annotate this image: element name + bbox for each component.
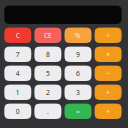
staticText: + (106, 88, 110, 97)
button[interactable]: Decimal point (34, 104, 61, 119)
button[interactable]: 0 (4, 104, 31, 119)
button[interactable]: Subtract (95, 66, 122, 81)
staticText: 1 (16, 88, 20, 97)
button[interactable]: 2 (34, 85, 61, 100)
staticText: 7 (16, 50, 20, 59)
button[interactable]: 8 (34, 47, 61, 62)
button[interactable]: Add (95, 85, 122, 100)
button[interactable]: 3 (64, 85, 91, 100)
staticText: 8 (46, 50, 50, 59)
button[interactable]: 6 (64, 66, 91, 81)
staticText: ÷ (106, 31, 110, 40)
staticText: × (106, 50, 110, 59)
button[interactable]: 7 (4, 47, 31, 62)
staticText: % (75, 31, 81, 40)
staticText: 5 (46, 69, 50, 78)
button[interactable]: 1 (4, 85, 31, 100)
staticText: 9 (76, 50, 80, 59)
staticText: 4 (16, 69, 20, 78)
staticText: − (106, 69, 110, 78)
staticText: 6 (76, 69, 80, 78)
staticText: C (16, 31, 20, 40)
button[interactable]: Percent (64, 28, 91, 43)
staticText: . (47, 107, 49, 116)
staticText: + (106, 107, 110, 116)
button[interactable]: Equals (64, 104, 91, 119)
button[interactable]: 5 (34, 66, 61, 81)
staticText: 3 (76, 88, 80, 97)
staticText: 2 (46, 88, 50, 97)
button[interactable]: Clear entry (34, 28, 61, 43)
staticText: CE (44, 31, 52, 40)
staticText: = (76, 107, 80, 116)
staticText: 0 (16, 107, 20, 116)
button[interactable]: Multiply (95, 47, 122, 62)
button[interactable]: Clear (4, 28, 31, 43)
button[interactable]: Divide (95, 28, 122, 43)
button[interactable]: 9 (64, 47, 91, 62)
button[interactable]: 4 (4, 66, 31, 81)
button[interactable]: Add (95, 104, 122, 119)
